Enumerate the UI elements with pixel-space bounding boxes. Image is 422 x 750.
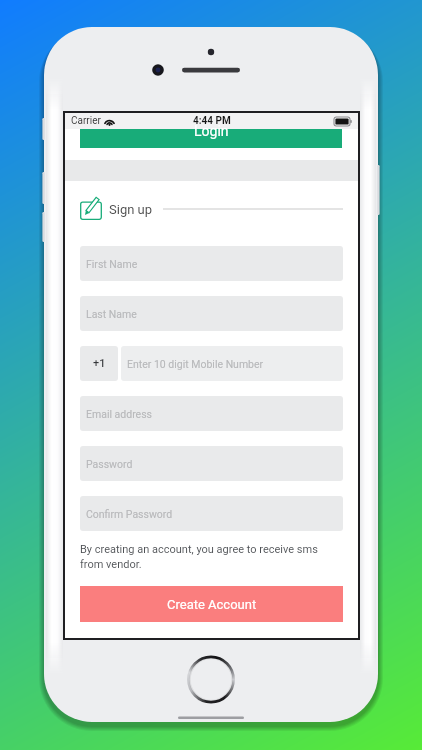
staticText: Last Name — [86, 308, 137, 320]
button[interactable]: Enter 10 digit Mobile Number — [121, 346, 343, 381]
button[interactable]: Home — [189, 655, 233, 699]
button[interactable] — [80, 129, 342, 148]
staticText: +1 — [93, 357, 106, 370]
staticText: First Name — [86, 258, 138, 270]
staticText: Carrier — [71, 115, 101, 127]
button[interactable]: +1 — [80, 346, 118, 381]
staticText: Sign up — [109, 202, 153, 217]
staticText: Confirm Password — [86, 508, 173, 520]
button[interactable]: First Name — [80, 246, 343, 281]
staticText: Create Account — [167, 597, 257, 612]
staticText: 4:44 PM — [193, 115, 231, 127]
button[interactable]: Password — [80, 446, 343, 481]
button[interactable]: Sign up — [80, 198, 153, 220]
staticText: By creating an account, you agree to rec… — [80, 543, 318, 571]
button[interactable]: Last Name — [80, 296, 343, 331]
button[interactable]: Create Account — [80, 586, 343, 622]
staticText: Enter 10 digit Mobile Number — [127, 358, 264, 370]
staticText: Email address — [86, 408, 153, 420]
staticText: Password — [86, 458, 133, 470]
button[interactable]: Email address — [80, 396, 343, 431]
staticText: Login — [194, 123, 229, 139]
button[interactable]: Confirm Password — [80, 496, 343, 531]
